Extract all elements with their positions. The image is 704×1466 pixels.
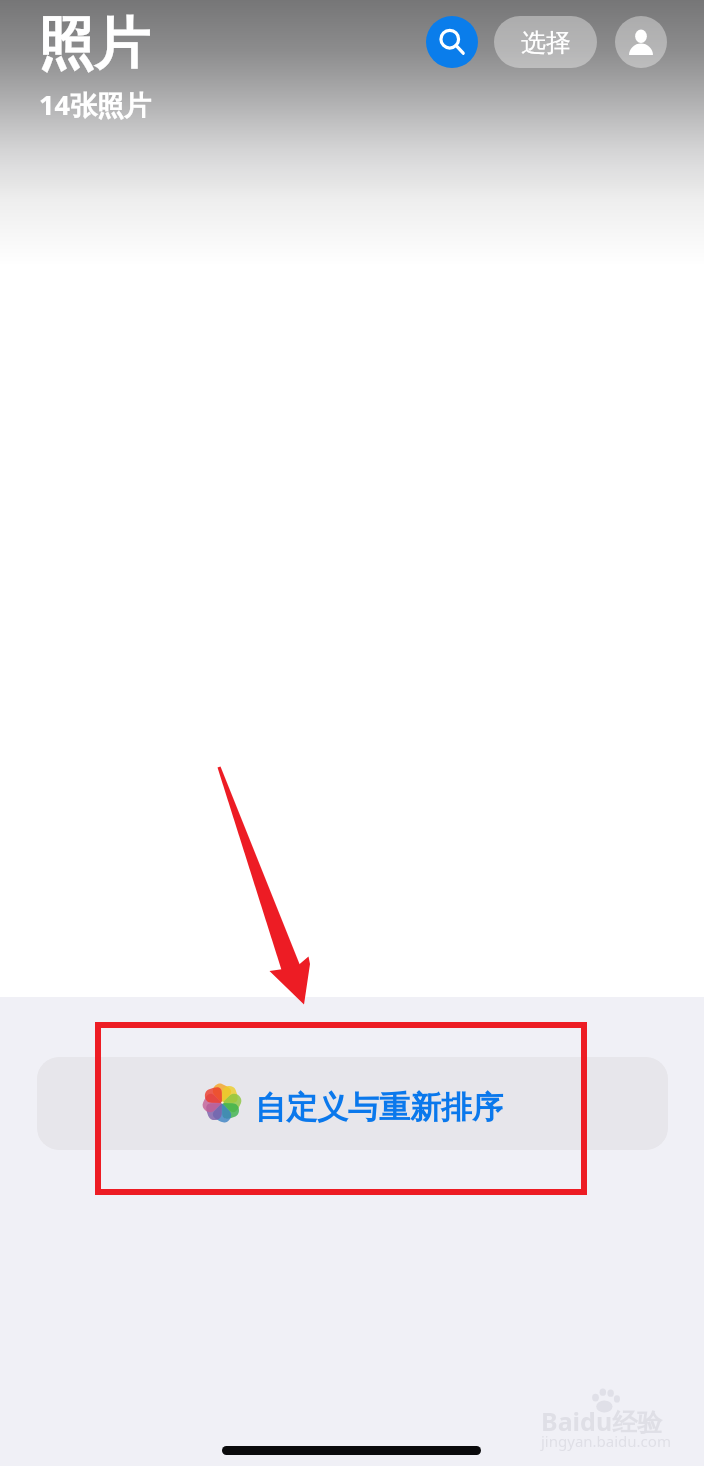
staticText: jingyan.baidu.com <box>541 1431 671 1451</box>
button[interactable]: 选择 <box>494 16 597 68</box>
staticText: 照片 <box>38 9 150 80</box>
staticText: Baidu经验 <box>541 1404 663 1438</box>
button[interactable]: 搜索 <box>426 16 478 68</box>
staticText: 14张照片 <box>39 86 151 123</box>
staticText: 自定义与重新排序 <box>255 1088 503 1127</box>
button[interactable]: 账户 <box>615 16 667 68</box>
button[interactable]: 自定义与重新排序 <box>37 1057 668 1150</box>
staticText: 选择 <box>521 27 571 58</box>
